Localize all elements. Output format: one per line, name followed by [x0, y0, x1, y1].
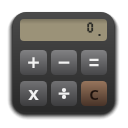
staticText: X	[28, 84, 39, 104]
button[interactable]: +	[20, 50, 47, 75]
button[interactable]: /	[51, 81, 77, 106]
button[interactable]: =	[81, 50, 107, 75]
staticText: C	[89, 84, 99, 104]
button[interactable]: x	[20, 81, 47, 106]
button[interactable]: -	[51, 50, 77, 75]
button[interactable]: C	[81, 81, 107, 106]
